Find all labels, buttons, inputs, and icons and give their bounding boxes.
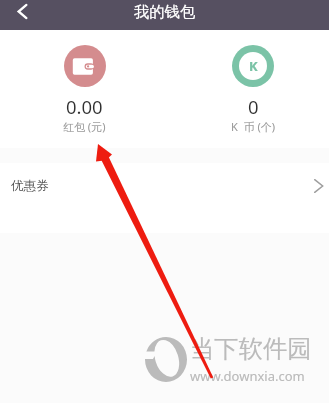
staticText: K [249,57,258,75]
staticText: 我的钱包 [134,2,196,21]
button[interactable]: K [212,30,293,134]
button[interactable]: 优惠券 [0,163,329,209]
button[interactable]: 0.00 [44,30,125,134]
staticText: 0 [248,94,259,119]
staticText: 0.00 [66,94,103,119]
staticText: 红包 (元) [63,119,106,134]
staticText: K 币 (个) [231,119,275,134]
staticText: 当下软件园 [190,334,312,365]
button[interactable]: Back [0,0,44,23]
staticText: 优惠券 [11,178,49,194]
staticText: www.downxia.com [190,367,305,385]
